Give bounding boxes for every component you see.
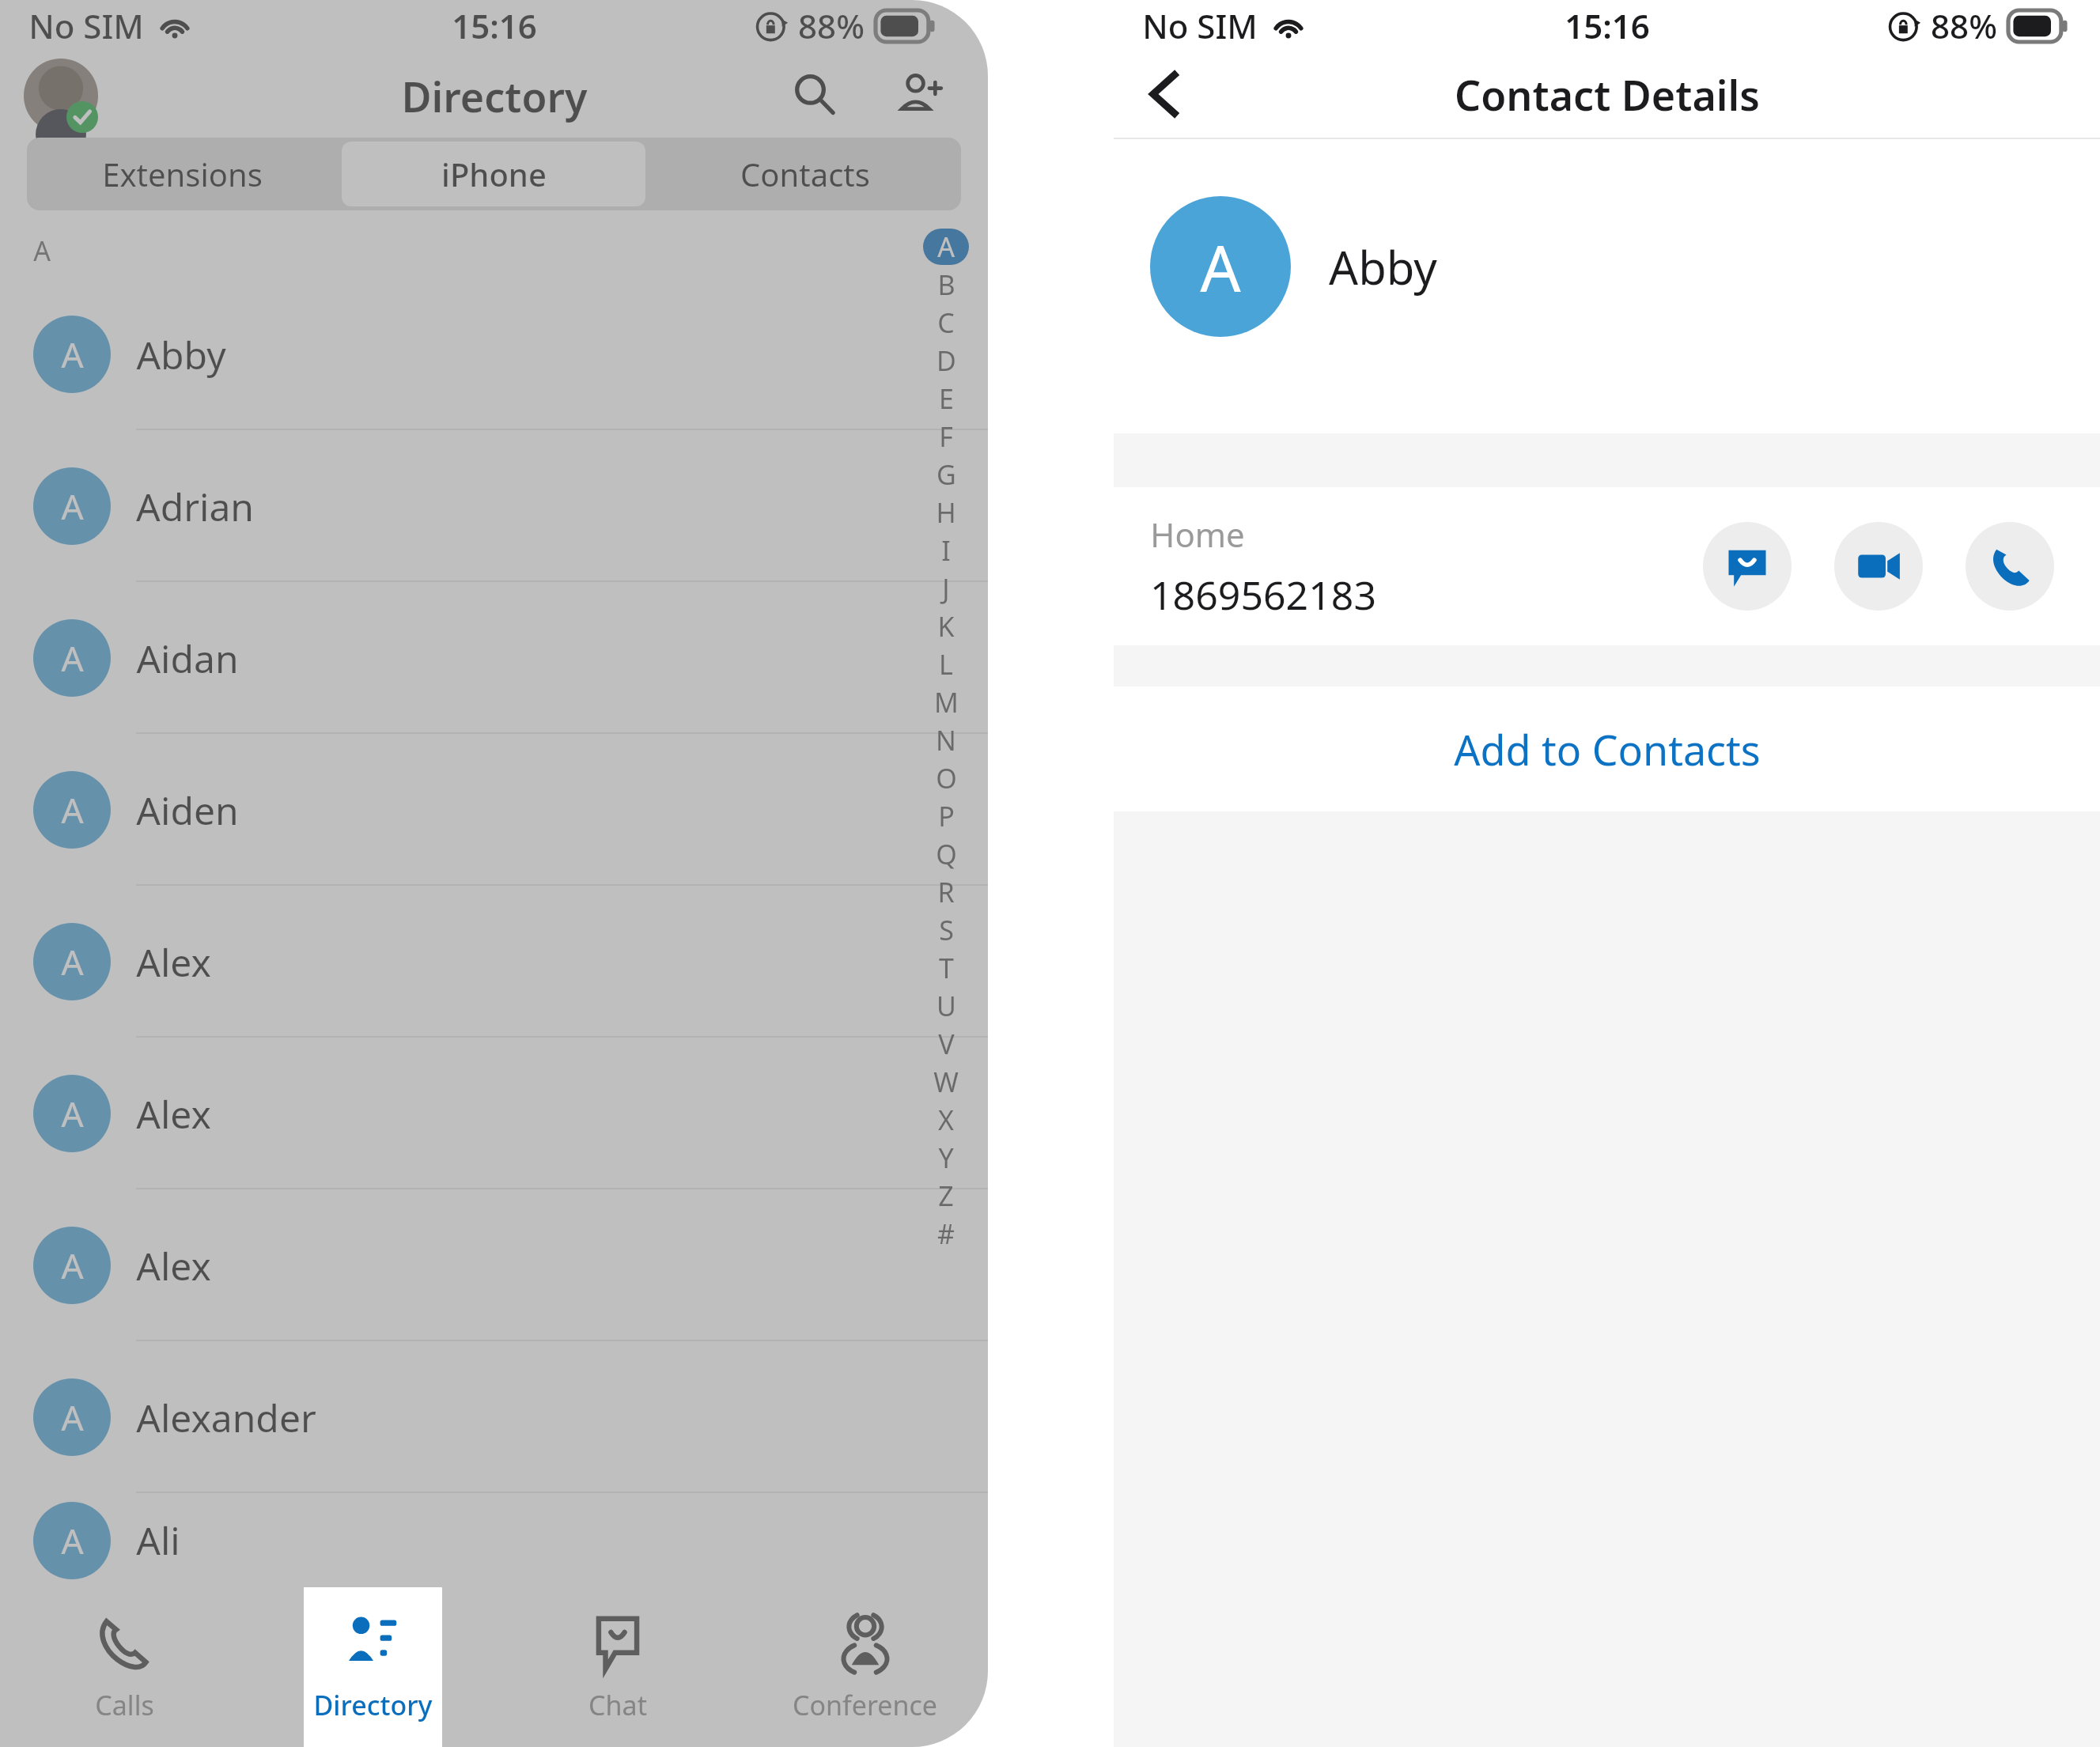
button[interactable]: A [0,1189,988,1341]
button[interactable]: M [921,683,971,721]
button[interactable]: B [921,266,971,304]
button[interactable]: G [921,456,971,493]
button[interactable]: Conference [741,1587,988,1747]
staticText: iPhone [441,153,547,195]
button[interactable]: Message [1703,522,1792,611]
staticText: Calls [95,1687,154,1723]
staticText: C [937,304,955,341]
staticText: No SIM [1142,3,1258,48]
staticText: A [61,1242,84,1289]
button[interactable]: A [0,278,988,430]
staticText: A [61,331,84,378]
button[interactable]: C [921,304,971,342]
button[interactable]: H [921,493,971,531]
staticText: T [939,950,954,986]
staticText: 1869562183 [1150,568,1376,622]
staticText: Add to Contacts [1454,721,1761,777]
staticText: A [61,938,84,985]
button[interactable]: Search [774,55,853,134]
staticText: Y [938,1140,954,1176]
staticText: V [938,1026,955,1062]
button[interactable]: Add contact [882,55,961,134]
staticText: Aidan [136,633,239,684]
staticText: J [942,570,950,607]
button[interactable]: A [0,430,988,582]
staticText: Directory [312,1687,431,1723]
staticText: Z [938,1178,954,1214]
staticText: A [1200,224,1241,310]
button[interactable]: U [921,987,971,1025]
staticText: B [937,267,955,303]
staticText: G [936,456,956,493]
staticText: Alex [136,1240,211,1291]
staticText: I [941,532,951,569]
button[interactable]: E [921,380,971,418]
staticText: Home [1150,512,1245,557]
button[interactable]: F [921,418,971,456]
button[interactable]: A [0,1341,988,1493]
button[interactable]: V [921,1025,971,1063]
button[interactable]: P [921,797,971,835]
button[interactable]: K [921,607,971,645]
button[interactable]: A [921,228,971,266]
button[interactable]: N [921,721,971,759]
staticText: A [61,634,84,682]
staticText: Directory [313,1687,433,1723]
staticText: H [936,494,956,531]
button[interactable]: Calls [0,1587,248,1747]
button[interactable]: Z [921,1177,971,1215]
button[interactable]: Home [1114,487,2100,645]
button[interactable]: A [0,1038,988,1189]
staticText: M [934,684,959,720]
staticText: Q [936,836,957,872]
button[interactable]: A [0,1493,988,1587]
staticText: Contacts [740,153,870,195]
staticText: D [936,342,956,379]
staticText: Directory [401,68,588,124]
button[interactable]: Directory [248,1587,494,1747]
button[interactable]: S [921,911,971,949]
button[interactable]: T [921,949,971,987]
button[interactable]: Profile [24,59,98,133]
button[interactable]: # [921,1215,971,1253]
staticText: Alex [136,1088,211,1140]
button[interactable]: J [921,569,971,607]
button[interactable]: I [921,531,971,569]
staticText: 88% [798,3,865,48]
staticText: A [61,1090,84,1137]
button[interactable]: A [0,582,988,734]
button[interactable]: W [921,1063,971,1101]
staticText: Conference [793,1687,937,1723]
staticText: A [61,1393,84,1441]
button[interactable]: A [0,886,988,1038]
button[interactable]: Add to Contacts [1114,686,2100,811]
button[interactable]: Call [1966,522,2054,611]
button[interactable]: Directory [304,1587,442,1747]
button[interactable]: L [921,645,971,683]
button[interactable]: Video call [1834,522,1923,611]
button[interactable]: Q [921,835,971,873]
button[interactable]: D [921,342,971,380]
staticText: Alexander [136,1392,316,1443]
staticText: P [938,798,955,834]
staticText: 15:16 [1565,3,1650,48]
staticText: U [936,988,956,1024]
button[interactable]: Back [1122,51,1209,138]
button[interactable]: Contacts [653,142,957,206]
button[interactable]: Chat [494,1587,741,1747]
button[interactable]: A [0,734,988,886]
staticText: # [937,1216,955,1252]
staticText: K [937,608,955,645]
button[interactable]: O [921,759,971,797]
button[interactable]: iPhone [342,142,645,206]
button[interactable]: Extensions [31,142,334,206]
staticText: W [933,1064,959,1100]
staticText: A [61,1517,84,1564]
button[interactable]: Y [921,1139,971,1177]
staticText: Ali [136,1514,180,1566]
button[interactable]: X [921,1101,971,1139]
staticText: Abby [136,329,226,380]
staticText: A [937,229,955,265]
button[interactable]: R [921,873,971,911]
staticText: Aiden [136,785,239,836]
